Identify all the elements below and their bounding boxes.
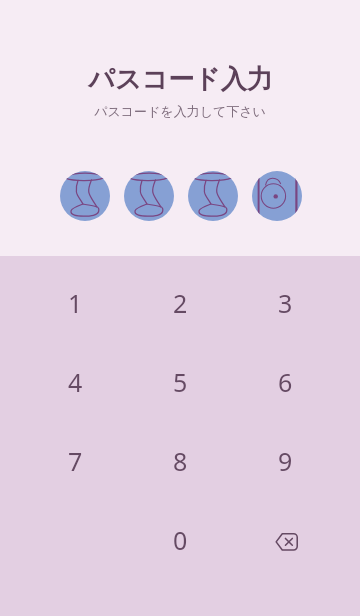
button[interactable]: 5 <box>150 352 210 412</box>
button[interactable]: 0 <box>150 510 210 570</box>
button[interactable]: 9 <box>255 431 315 491</box>
button[interactable]: 3 <box>255 273 315 333</box>
staticText: 6 <box>278 365 293 399</box>
staticText: 1 <box>68 286 83 320</box>
button[interactable]: Backspace <box>255 510 315 570</box>
button[interactable]: 8 <box>150 431 210 491</box>
staticText: 0 <box>173 523 188 557</box>
button[interactable]: 7 <box>45 431 105 491</box>
staticText: パスコードを入力して下さい <box>94 103 266 119</box>
staticText: 9 <box>278 444 293 478</box>
staticText: 8 <box>173 444 188 478</box>
staticText: 5 <box>173 365 188 399</box>
staticText: パスコード入力 <box>88 63 273 96</box>
staticText: 4 <box>68 365 83 399</box>
button[interactable]: 2 <box>150 273 210 333</box>
button[interactable]: 4 <box>45 352 105 412</box>
staticText: 7 <box>68 444 83 478</box>
button[interactable]: 1 <box>45 273 105 333</box>
staticText: 2 <box>173 286 188 320</box>
staticText: 3 <box>278 286 293 320</box>
button[interactable]: 6 <box>255 352 315 412</box>
